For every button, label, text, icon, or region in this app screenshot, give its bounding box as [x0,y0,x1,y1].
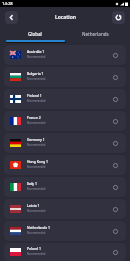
staticText: Recommended [27,187,46,191]
staticText: Netherlands [82,31,109,37]
button[interactable]: France 2 [4,111,126,131]
staticText: Latvia 1 [27,203,40,208]
staticText: Bulgaria 1 [27,71,44,76]
button[interactable]: Italy 1 [4,177,126,197]
staticText: France 2 [27,115,41,120]
button[interactable]: Poland 1 [4,243,126,261]
staticText: Recommended [27,121,46,125]
staticText: Location [55,14,76,21]
staticText: Poland 1 [27,246,42,251]
button[interactable]: Germany 1 [4,133,126,153]
staticText: Recommended [27,165,46,169]
staticText: Australia 1 [27,49,45,54]
staticText: Recommended [27,231,46,235]
staticText: Finland 1 [27,93,42,98]
button[interactable]: Refresh [112,11,125,24]
staticText: Recommended [27,99,46,103]
staticText: Netherlands 1 [27,225,50,230]
staticText: Recommended [27,252,46,256]
staticText: Recommended [27,143,46,147]
staticText: Hong Kong 1 [27,159,48,164]
button[interactable]: Bulgaria 1 [4,67,126,87]
button[interactable]: Global [0,28,65,40]
staticText: Recommended [27,209,46,213]
staticText: Recommended [27,55,46,59]
button[interactable]: Back [5,11,18,24]
staticText: Italy 1 [27,181,37,186]
button[interactable]: Hong Kong 1 [4,155,126,175]
staticText: Recommended [27,77,46,81]
button[interactable]: Latvia 1 [4,199,126,219]
staticText: Germany 1 [27,137,45,142]
staticText: Global [28,31,42,37]
button[interactable]: Australia 1 [4,45,126,65]
button[interactable]: Finland 1 [4,89,126,109]
button[interactable]: Netherlands 1 [4,221,126,241]
button[interactable]: Netherlands [65,28,130,40]
staticText: 14:28 [2,1,13,7]
